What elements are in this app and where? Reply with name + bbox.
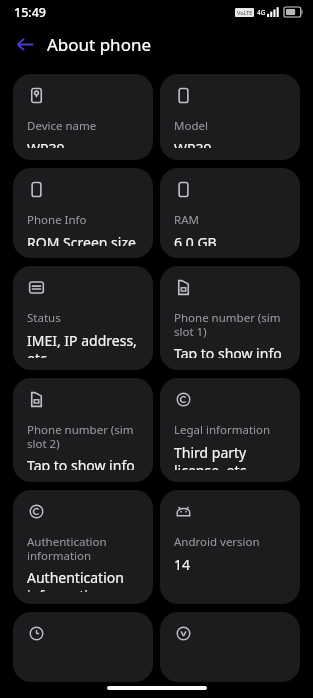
button[interactable]: Phone Info [13,168,153,258]
button[interactable] [13,612,153,682]
button[interactable] [160,612,300,682]
staticText: Authentication information [27,568,143,592]
button[interactable]: RAM [160,168,300,258]
staticText: VoLTE [237,9,253,16]
staticText: IMEI, IP address, etc [27,331,143,358]
staticText: Phone number (sim slot 1) [174,310,290,339]
staticText: 4G [257,8,266,17]
staticText: 6.0 GB [174,233,217,246]
button[interactable]: Status [13,266,153,370]
staticText: WP39 [27,139,65,148]
button[interactable]: Android version [160,490,300,604]
staticText: RAM [174,212,199,228]
staticText: Tap to show info [27,456,135,470]
staticText: ROM,Screen size [27,233,136,246]
staticText: About phone [47,33,152,56]
staticText: Tap to show info [174,344,282,358]
staticText: Authentication information [27,534,143,563]
button[interactable]: Phone number (sim slot 1) [160,266,300,370]
staticText: Third party license, etc [174,443,290,470]
staticText: Legal information [174,422,271,438]
button[interactable]: Legal information [160,378,300,482]
staticText: Phone number (sim slot 2) [27,422,143,451]
staticText: Phone Info [27,212,87,228]
staticText: Device name [27,118,97,134]
staticText: 15:49 [14,4,47,21]
button[interactable]: Device name [13,74,153,160]
button[interactable]: Authentication information [13,490,153,604]
staticText: Android version [174,534,260,550]
staticText: Status [27,310,61,326]
button[interactable]: Back [10,29,40,59]
button[interactable]: Model [160,74,300,160]
staticText: Model [174,118,208,134]
button[interactable]: Phone number (sim slot 2) [13,378,153,482]
staticText: WP39 [174,139,212,148]
staticText: 14 [174,555,191,574]
